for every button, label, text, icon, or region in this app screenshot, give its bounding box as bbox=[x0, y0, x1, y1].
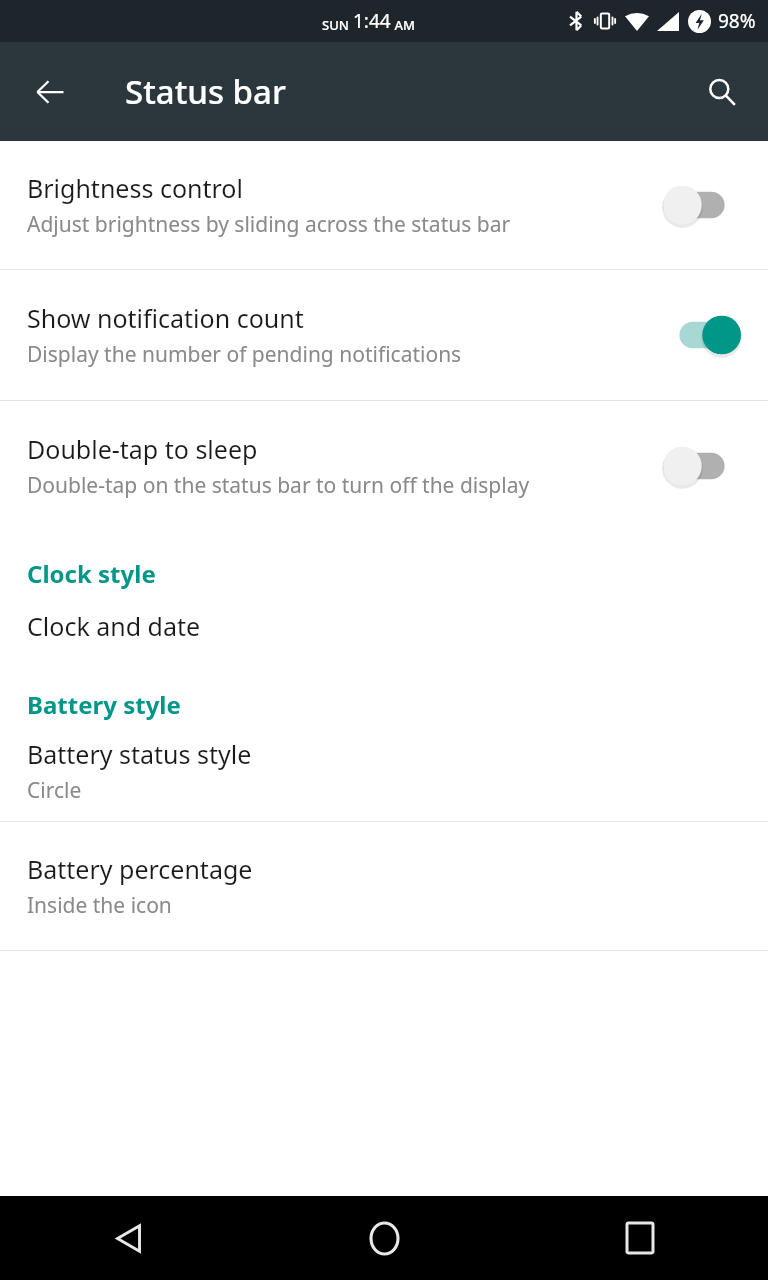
staticText: Inside the icon bbox=[27, 891, 172, 920]
button[interactable]: Brightness control bbox=[0, 141, 768, 269]
button[interactable]: Back bbox=[92, 1202, 164, 1274]
staticText: Double-tap to sleep bbox=[27, 432, 258, 466]
staticText: Double-tap on the status bar to turn off… bbox=[27, 471, 530, 500]
staticText: Battery percentage bbox=[27, 852, 253, 886]
staticText: 1:44 bbox=[353, 8, 391, 34]
button[interactable]: Battery percentage bbox=[0, 822, 768, 950]
staticText: Show notification count bbox=[27, 301, 304, 335]
staticText: Adjust brightness by sliding across the … bbox=[27, 210, 511, 239]
staticText: Clock style bbox=[27, 557, 156, 590]
staticText: Circle bbox=[27, 776, 82, 805]
staticText: 98% bbox=[718, 8, 756, 34]
staticText: Battery style bbox=[27, 688, 181, 721]
button[interactable]: Navigate up bbox=[20, 62, 80, 122]
staticText: AM bbox=[391, 16, 415, 34]
button[interactable]: Show notification count bbox=[0, 270, 768, 400]
button[interactable]: Double-tap to sleep bbox=[0, 401, 768, 531]
staticText: Battery status style bbox=[27, 737, 252, 771]
button[interactable]: Battery status style bbox=[0, 721, 768, 821]
button[interactable]: Home bbox=[348, 1202, 420, 1274]
staticText: Brightness control bbox=[27, 171, 243, 205]
button[interactable]: Search bbox=[693, 63, 751, 121]
button[interactable]: Recent apps bbox=[604, 1202, 676, 1274]
staticText: Display the number of pending notificati… bbox=[27, 340, 462, 369]
staticText: Status bar bbox=[125, 69, 286, 114]
staticText: SUN bbox=[322, 16, 353, 34]
staticText: Clock and date bbox=[27, 609, 201, 643]
button[interactable]: Clock and date bbox=[0, 590, 768, 662]
